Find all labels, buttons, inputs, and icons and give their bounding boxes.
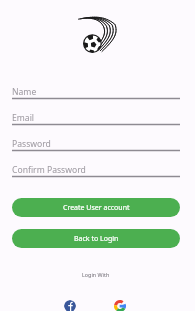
staticText: Name <box>12 86 37 98</box>
staticText: Back to Login <box>74 234 119 244</box>
button[interactable]: Back to Login <box>12 229 180 248</box>
staticText: Password <box>12 138 51 150</box>
button[interactable]: Login with Google <box>114 300 126 311</box>
staticText: Email <box>12 112 35 124</box>
button[interactable]: Create User account <box>12 198 180 217</box>
staticText: Create User account <box>63 203 130 213</box>
staticText: Login With <box>82 271 110 278</box>
staticText: Confirm Password <box>12 164 86 176</box>
button[interactable]: Login with Facebook <box>64 300 76 311</box>
